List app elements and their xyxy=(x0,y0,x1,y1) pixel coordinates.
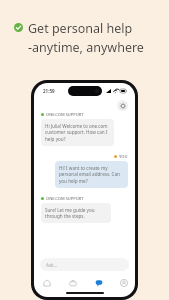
button[interactable]: Shop xyxy=(60,275,86,291)
staticText: Hi Julia! Welcome to one.com customer su… xyxy=(45,123,110,142)
staticText: ONE.COM SUPPORT xyxy=(46,112,84,117)
staticText: Hi! I want to create my personal email a… xyxy=(59,165,124,184)
staticText: 21:59 xyxy=(43,88,55,94)
staticText: -anytime, anywhere xyxy=(28,39,144,56)
staticText: Ask... xyxy=(46,262,58,268)
staticText: ONE.COM SUPPORT xyxy=(46,196,84,201)
button[interactable]: Support xyxy=(86,275,112,291)
button[interactable]: Ask... xyxy=(40,258,129,271)
button[interactable]: Hi Julia! Welcome to one.com customer su… xyxy=(41,119,114,146)
button[interactable]: Account xyxy=(112,275,135,291)
button[interactable]: Sure! Let me guide you through the steps… xyxy=(41,203,111,223)
button[interactable]: Home xyxy=(34,275,60,291)
button[interactable]: Settings xyxy=(117,100,128,111)
staticText: Get personal help xyxy=(28,20,133,37)
staticText: YOU xyxy=(119,154,128,159)
staticText: Sure! Let me guide you through the steps… xyxy=(45,207,107,219)
button[interactable]: Hi! I want to create my personal email a… xyxy=(55,161,128,188)
